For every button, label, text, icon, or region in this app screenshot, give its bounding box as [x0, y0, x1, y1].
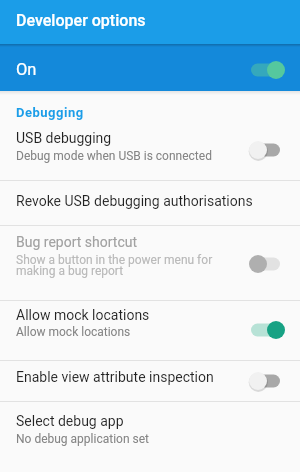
- staticText: Revoke USB debugging authorisations: [16, 193, 253, 209]
- button[interactable]: [0, 225, 300, 300]
- button[interactable]: [248, 245, 286, 283]
- staticText: No debug application set: [16, 432, 150, 446]
- button[interactable]: [248, 362, 286, 400]
- button[interactable]: [0, 0, 300, 44]
- button[interactable]: [0, 401, 300, 460]
- button[interactable]: [0, 128, 300, 180]
- staticText: Debugging: [16, 105, 84, 120]
- button[interactable]: [0, 300, 300, 360]
- staticText: making a bug report: [16, 264, 124, 278]
- button[interactable]: [248, 51, 286, 89]
- staticText: Debug mode when USB is connected: [16, 149, 212, 163]
- button[interactable]: [248, 311, 286, 349]
- staticText: Bug report shortcut: [16, 234, 138, 250]
- staticText: Select debug app: [16, 413, 124, 429]
- staticText: Allow mock locations: [16, 325, 131, 339]
- button[interactable]: [0, 360, 300, 401]
- button[interactable]: [248, 131, 286, 169]
- staticText: On: [16, 60, 37, 79]
- staticText: Enable view attribute inspection: [16, 369, 214, 385]
- staticText: USB debugging: [16, 130, 112, 146]
- staticText: Developer options: [16, 11, 146, 30]
- staticText: Allow mock locations: [16, 307, 150, 323]
- staticText: Show a button in the power menu for: [16, 253, 213, 267]
- button[interactable]: [0, 180, 300, 225]
- button[interactable]: [0, 44, 300, 91]
